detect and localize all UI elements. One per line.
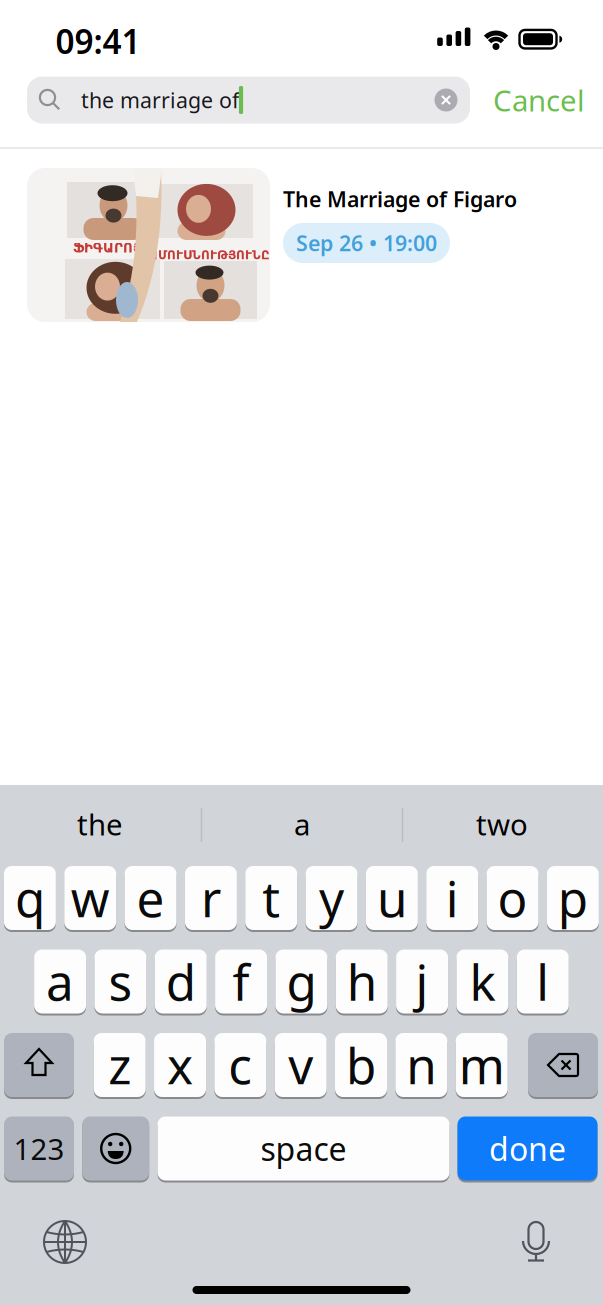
button[interactable] xyxy=(528,1033,598,1097)
button[interactable]: q xyxy=(4,865,56,931)
staticText: i xyxy=(446,865,459,931)
staticText: q xyxy=(15,865,45,931)
button[interactable]: space xyxy=(157,1116,449,1180)
button[interactable]: t xyxy=(245,865,297,931)
button[interactable] xyxy=(434,88,457,111)
button[interactable]: u xyxy=(366,865,418,931)
staticText: a xyxy=(46,949,74,1014)
staticText: j xyxy=(416,949,429,1014)
staticText: b xyxy=(346,1032,376,1098)
staticText: g xyxy=(286,949,316,1014)
staticText: the marriage of xyxy=(81,86,239,114)
staticText: ՖԻԳԱՐՈՅԻ xyxy=(73,240,151,255)
button[interactable]: x xyxy=(154,1032,206,1098)
staticText: a xyxy=(294,804,310,843)
staticText: Sep 26 • 19:00 xyxy=(296,229,437,257)
button[interactable]: g xyxy=(275,949,327,1014)
staticText: f xyxy=(233,949,250,1014)
button[interactable]: Cancel xyxy=(484,76,594,123)
button[interactable]: h xyxy=(336,949,388,1014)
staticText: the xyxy=(77,804,123,843)
staticText: 09:41 xyxy=(55,19,140,63)
staticText: z xyxy=(108,1032,131,1098)
staticText: k xyxy=(469,949,495,1014)
staticText: n xyxy=(406,1032,436,1098)
button[interactable] xyxy=(42,1219,88,1265)
staticText: c xyxy=(228,1032,252,1098)
staticText: two xyxy=(476,804,528,843)
button[interactable]: i xyxy=(426,865,478,931)
staticText: Cancel xyxy=(493,80,585,119)
button[interactable]: k xyxy=(456,949,508,1014)
staticText: l xyxy=(536,949,549,1014)
button[interactable]: done xyxy=(457,1116,597,1180)
button[interactable]: 123 xyxy=(4,1116,74,1180)
button[interactable] xyxy=(82,1116,149,1180)
staticText: e xyxy=(137,865,165,931)
staticText: m xyxy=(459,1032,505,1098)
staticText: space xyxy=(260,1127,346,1170)
button[interactable]: the xyxy=(4,793,196,855)
button[interactable]: s xyxy=(94,949,146,1014)
staticText: t xyxy=(262,865,280,931)
button[interactable]: z xyxy=(94,1032,146,1098)
button[interactable] xyxy=(4,1033,74,1097)
button[interactable]: p xyxy=(547,865,599,931)
staticText: r xyxy=(201,865,221,931)
staticText: o xyxy=(497,865,527,931)
button[interactable]: r xyxy=(185,865,237,931)
staticText: 123 xyxy=(13,1129,64,1168)
staticText: done xyxy=(489,1127,566,1170)
staticText: w xyxy=(71,865,110,931)
button[interactable]: two xyxy=(406,793,598,855)
staticText: s xyxy=(108,949,132,1014)
staticText: d xyxy=(166,949,196,1014)
staticText: ԱՄՈՒՍՆՈՒԹՅՈՒՆԸ xyxy=(148,248,270,262)
button[interactable]: f xyxy=(215,949,267,1014)
button[interactable]: e xyxy=(125,865,177,931)
button[interactable]: w xyxy=(64,865,116,931)
staticText: h xyxy=(347,949,377,1014)
button[interactable]: j xyxy=(396,949,448,1014)
button[interactable] xyxy=(518,1221,554,1265)
button[interactable]: y xyxy=(305,865,357,931)
staticText: y xyxy=(319,865,344,931)
button[interactable]: a xyxy=(206,793,398,855)
button[interactable]: a xyxy=(34,949,86,1014)
staticText: p xyxy=(558,865,588,931)
button[interactable]: n xyxy=(395,1032,447,1098)
staticText: The Marriage of Figaro xyxy=(283,185,517,213)
button[interactable]: c xyxy=(214,1032,266,1098)
staticText: u xyxy=(377,865,407,931)
button[interactable]: d xyxy=(155,949,207,1014)
button[interactable]: ՖԻԳԱՐՈՅԻ xyxy=(0,155,603,335)
button[interactable]: o xyxy=(486,865,538,931)
button[interactable]: v xyxy=(275,1032,327,1098)
button[interactable]: l xyxy=(517,949,569,1014)
staticText: v xyxy=(288,1032,313,1098)
staticText: x xyxy=(167,1032,193,1098)
button[interactable]: m xyxy=(456,1032,508,1098)
button[interactable]: b xyxy=(335,1032,387,1098)
